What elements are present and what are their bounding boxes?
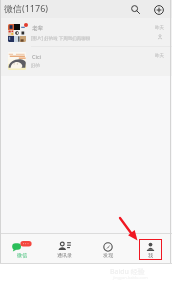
- staticText: 微信: [17, 252, 27, 258]
- button[interactable]: 发现: [96, 239, 119, 260]
- staticText: 昨天: [155, 25, 164, 31]
- staticText: 通讯录: [57, 252, 72, 258]
- staticText: [图片] 好的啦 下周我们再聊聊: [31, 35, 91, 41]
- staticText: jingyan.baidu.com: [113, 275, 148, 280]
- staticText: 老辈: [32, 25, 43, 32]
- button[interactable]: Search: [128, 2, 143, 17]
- staticText: 好的: [31, 63, 40, 69]
- button[interactable]: 微信: [10, 239, 33, 260]
- staticText: Cici: [32, 53, 41, 60]
- button[interactable]: 老辈: [0, 18, 172, 47]
- button[interactable]: Cici: [0, 47, 172, 76]
- staticText: 昨天: [155, 53, 164, 59]
- staticText: 我: [148, 252, 153, 258]
- staticText: 发现: [103, 252, 113, 258]
- button[interactable]: 通讯录: [53, 239, 76, 260]
- staticText: Baidu 经验: [110, 267, 145, 277]
- staticText: 微信(1176): [4, 2, 48, 14]
- button[interactable]: Add: [151, 2, 166, 17]
- button[interactable]: 我: [139, 239, 162, 260]
